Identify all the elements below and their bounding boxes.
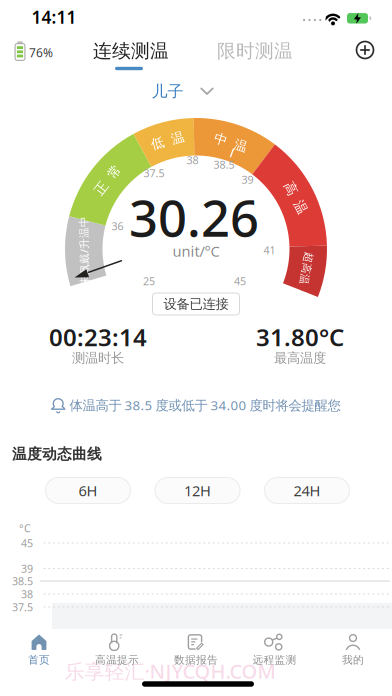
staticText: 30.26: [129, 183, 259, 251]
button[interactable]: 首页: [28, 633, 50, 666]
staticText: 乐享轻汇·NJYCQH.COM: [64, 658, 275, 684]
button[interactable]: 设备已连接: [152, 292, 240, 315]
staticText: 00:23:14: [49, 321, 147, 353]
staticText: 测温时长: [72, 350, 124, 366]
staticText: 高 温: [279, 189, 313, 206]
staticText: 设备已连接: [163, 296, 228, 312]
staticText: 36: [111, 219, 123, 233]
staticText: 41: [263, 243, 275, 257]
staticText: 数据报告: [174, 653, 218, 666]
button[interactable]: 我的: [342, 633, 364, 666]
staticText: 76%: [29, 44, 53, 60]
staticText: 38: [186, 153, 198, 167]
staticText: 中 温: [214, 134, 248, 151]
staticText: 体温高于 38.5 度或低于 34.00 度时将会提醒您: [69, 396, 340, 414]
button[interactable]: 12H: [154, 477, 240, 504]
staticText: 限时测温: [217, 39, 293, 62]
staticText: 温度动态曲线: [12, 445, 102, 463]
staticText: 38.5: [12, 574, 33, 588]
button[interactable]: 6H: [45, 477, 131, 504]
button[interactable]: 添加: [355, 40, 375, 60]
button[interactable]: 连续测温: [93, 39, 169, 62]
button[interactable]: 儿子: [151, 82, 213, 101]
staticText: 超高温: [290, 262, 323, 275]
button[interactable]: 高温提示: [95, 633, 139, 666]
staticText: 6H: [78, 481, 97, 500]
staticText: 高温提示: [95, 653, 139, 666]
button[interactable]: 数据报告: [174, 633, 218, 666]
button[interactable]: 限时测温: [217, 39, 293, 62]
staticText: °C: [19, 521, 31, 535]
staticText: 31.80°C: [256, 321, 344, 353]
staticText: 38.5: [213, 157, 234, 172]
staticText: 45: [21, 536, 33, 550]
button[interactable]: 远程监测: [252, 633, 296, 666]
staticText: 14:11: [31, 5, 76, 28]
staticText: 最高温度: [274, 350, 326, 366]
staticText: 正 常: [91, 172, 125, 188]
staticText: 24H: [293, 481, 320, 500]
staticText: 连续测温: [93, 39, 169, 62]
staticText: unit/°C: [172, 241, 219, 261]
staticText: 儿子: [151, 82, 183, 101]
staticText: 37.5: [143, 166, 164, 180]
staticText: 25: [143, 274, 155, 288]
staticText: 39: [21, 561, 33, 576]
staticText: 首页: [28, 653, 50, 666]
staticText: 我的: [342, 653, 364, 666]
staticText: 39: [241, 172, 253, 187]
staticText: 未佩戴/升温中: [49, 244, 119, 258]
staticText: 低 温: [150, 132, 184, 149]
staticText: 12H: [184, 481, 211, 500]
staticText: 45: [234, 274, 246, 288]
staticText: 38: [21, 587, 33, 601]
staticText: 37.5: [12, 600, 33, 614]
button[interactable]: 24H: [264, 477, 350, 504]
staticText: 远程监测: [252, 653, 296, 666]
